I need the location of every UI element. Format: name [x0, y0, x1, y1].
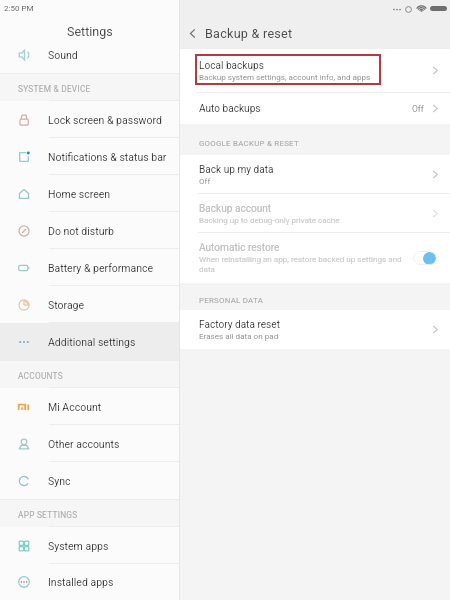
staticText: Other accounts — [48, 438, 120, 450]
staticText: Erases all data on pad — [199, 331, 279, 340]
button[interactable]: Lock screen & password — [0, 101, 180, 138]
staticText: ACCOUNTS — [18, 371, 63, 381]
staticText: Backup & reset — [205, 26, 293, 41]
button[interactable]: Factory data reset — [180, 310, 450, 349]
other: Back — [186, 27, 199, 40]
button[interactable]: Automatic restore — [180, 233, 450, 283]
button[interactable]: Local backups — [180, 49, 450, 92]
button[interactable]: Do not disturb — [0, 212, 180, 249]
staticText: Mi Account — [48, 401, 102, 413]
button[interactable]: System apps — [0, 527, 180, 564]
staticText: Battery & performance — [48, 262, 154, 274]
staticText: Installed apps — [48, 576, 114, 588]
staticText: When reinstalling an app, restore backed… — [199, 254, 403, 274]
button[interactable]: Additional settings — [0, 323, 180, 360]
staticText: Factory data reset — [199, 319, 280, 331]
staticText: PERSONAL DATA — [199, 296, 264, 305]
staticText: Do not disturb — [48, 225, 114, 237]
staticText: Notifications & status bar — [48, 151, 167, 163]
staticText: Backup account — [199, 203, 272, 215]
button[interactable]: Back — [186, 20, 293, 46]
button[interactable]: Back up my data — [180, 155, 450, 193]
button[interactable]: Notifications & status bar — [0, 138, 180, 175]
staticText: Off — [199, 176, 211, 185]
staticText: APP SETTINGS — [18, 510, 78, 520]
staticText: Backing up to debug-only private cache — [199, 215, 340, 224]
staticText: System apps — [48, 540, 109, 552]
staticText: GOOGLE BACKUP & RESET — [199, 139, 299, 148]
staticText: Additional settings — [48, 336, 136, 348]
staticText: Home screen — [48, 188, 111, 200]
button[interactable]: Other accounts — [0, 425, 180, 462]
button[interactable]: Battery & performance — [0, 249, 180, 286]
button[interactable]: Automatic restore toggle — [413, 251, 437, 265]
staticText: Local backups — [199, 60, 264, 72]
button[interactable]: Backup account — [180, 194, 450, 232]
button[interactable]: Installed apps — [0, 564, 180, 600]
button[interactable]: Sync — [0, 462, 180, 499]
button[interactable]: Auto backups — [180, 93, 450, 124]
button[interactable]: Sound — [0, 46, 180, 73]
staticText: 2:50 PM — [4, 4, 34, 13]
staticText: Settings — [67, 24, 113, 39]
staticText: Off — [412, 104, 424, 114]
button[interactable]: Home screen — [0, 175, 180, 212]
staticText: SYSTEM & DEVICE — [18, 84, 91, 94]
staticText: Automatic restore — [199, 242, 280, 254]
staticText: Backup system settings, account info, an… — [199, 72, 371, 81]
staticText: Sync — [48, 475, 71, 487]
staticText: Storage — [48, 299, 85, 311]
button[interactable]: Mi Account — [0, 388, 180, 425]
button[interactable]: Storage — [0, 286, 180, 323]
staticText: Back up my data — [199, 164, 274, 176]
staticText: Sound — [48, 49, 78, 61]
staticText: Lock screen & password — [48, 114, 162, 126]
staticText: Auto backups — [199, 103, 412, 115]
